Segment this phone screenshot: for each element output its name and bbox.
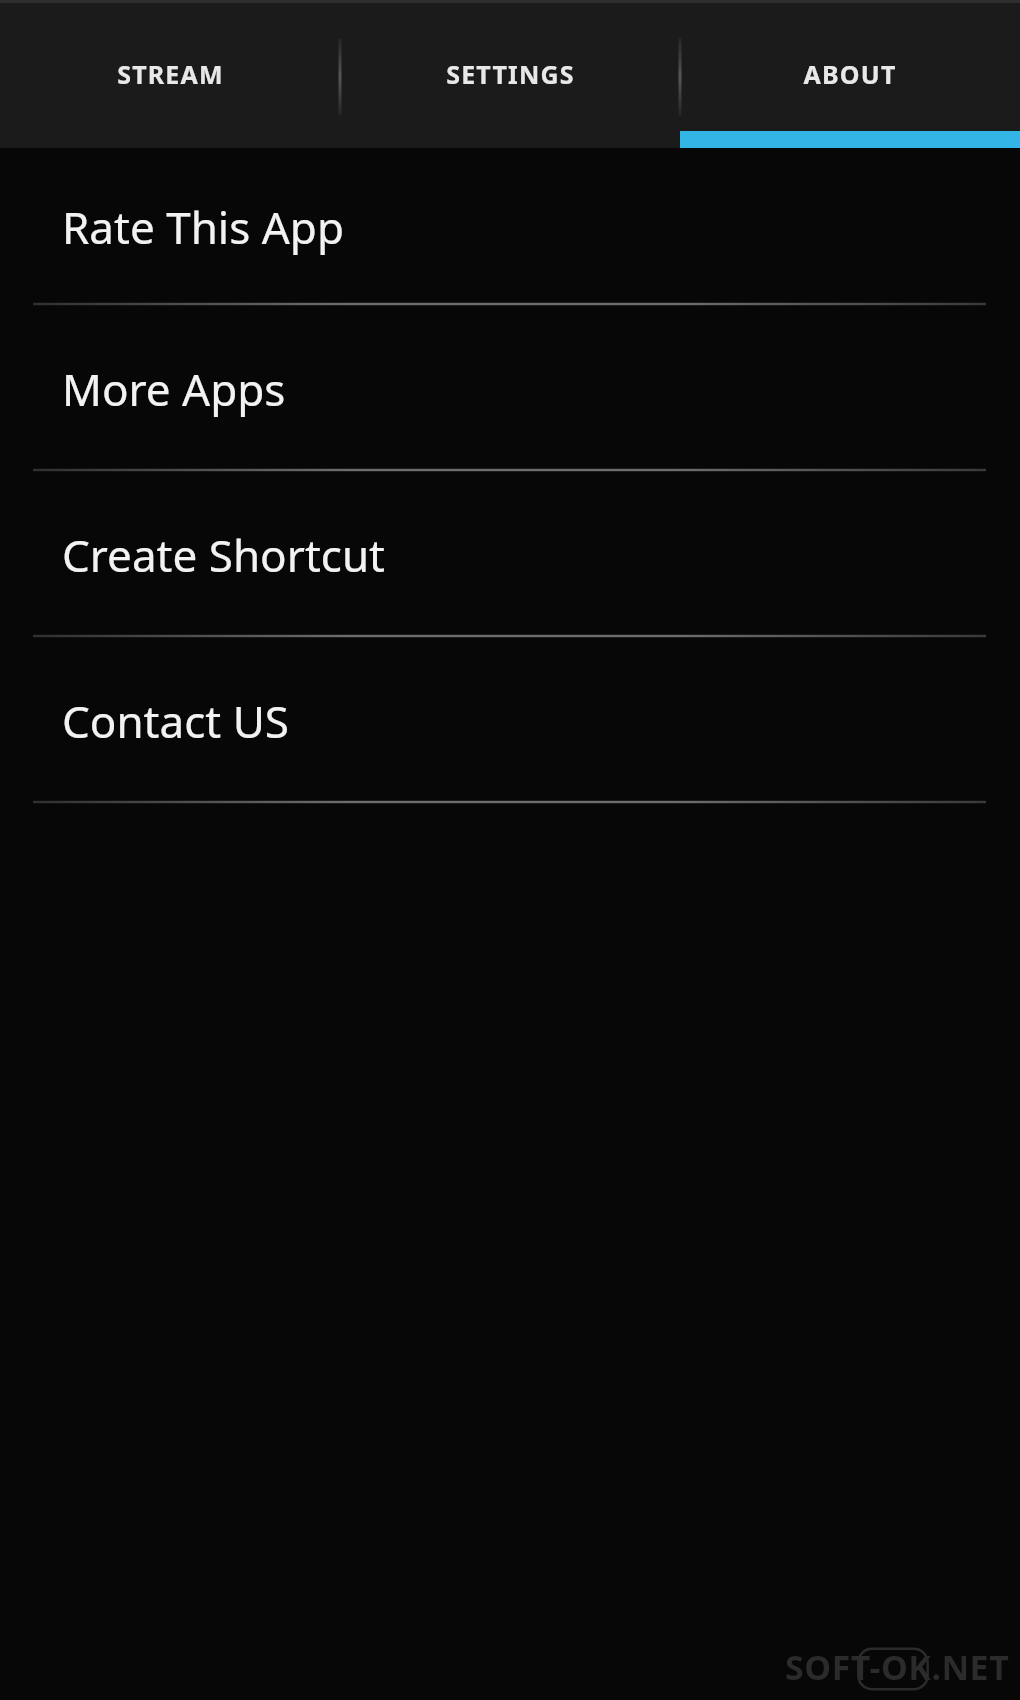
staticText: ABOUT [803, 57, 897, 91]
staticText: Rate This App [62, 197, 344, 257]
staticText: Contact US [62, 691, 289, 751]
staticText: More Apps [62, 359, 286, 419]
staticText: SOFT-OK.NET [785, 1644, 1010, 1690]
staticText: SETTINGS [446, 57, 575, 91]
button[interactable]: STREAM [0, 0, 340, 148]
button[interactable]: ABOUT [680, 0, 1020, 148]
staticText: Create Shortcut [62, 525, 385, 585]
button[interactable]: SETTINGS [340, 0, 680, 148]
button[interactable]: Rate This App [0, 148, 1020, 306]
button[interactable]: More Apps [0, 306, 1020, 472]
staticText: STREAM [117, 57, 224, 91]
button[interactable]: Contact US [0, 638, 1020, 804]
button[interactable]: Create Shortcut [0, 472, 1020, 638]
